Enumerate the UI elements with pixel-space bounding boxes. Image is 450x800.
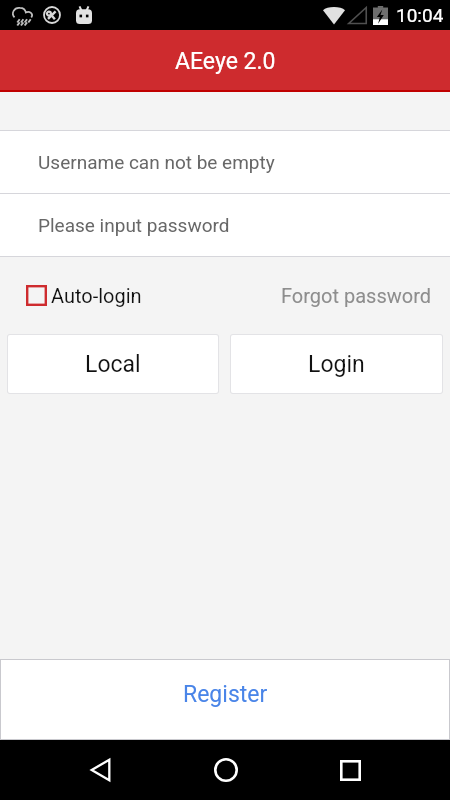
- button[interactable]: Username can not be empty: [0, 131, 450, 193]
- staticText: Register: [183, 681, 268, 708]
- button[interactable]: Register: [1, 660, 449, 739]
- staticText: Auto-login: [51, 284, 142, 307]
- staticText: Username can not be empty: [38, 151, 275, 173]
- button[interactable]: Auto-login: [18, 276, 150, 315]
- button[interactable]: Home: [163, 740, 288, 800]
- staticText: AEeye 2.0: [175, 48, 276, 75]
- staticText: Forgot password: [281, 284, 432, 307]
- button[interactable]: Login: [231, 335, 442, 393]
- staticText: 10:04: [396, 4, 444, 26]
- staticText: Please input password: [38, 214, 230, 236]
- button[interactable]: Forgot password: [269, 274, 444, 317]
- button[interactable]: Back: [38, 740, 163, 800]
- staticText: Login: [308, 351, 365, 378]
- staticText: Local: [85, 351, 141, 378]
- button[interactable]: Local: [8, 335, 218, 393]
- button[interactable]: Please input password: [0, 194, 450, 256]
- button[interactable]: Recents: [288, 740, 413, 800]
